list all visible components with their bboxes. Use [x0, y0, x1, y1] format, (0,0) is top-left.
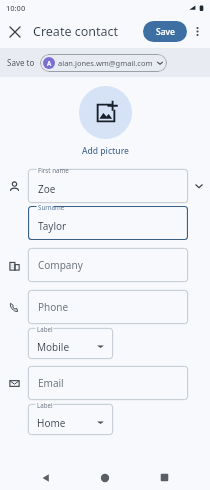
staticText: alan.jones.wm@gmail.com — [58, 58, 153, 68]
button[interactable]: Label — [28, 404, 113, 435]
button[interactable]: Home — [92, 465, 118, 490]
button[interactable]: Recent apps — [151, 465, 177, 490]
button[interactable]: First name — [28, 169, 188, 203]
staticText: Company — [38, 258, 83, 272]
staticText: Taylor — [38, 219, 67, 233]
button[interactable]: Save to — [0, 48, 210, 77]
button[interactable]: Close — [4, 21, 26, 43]
staticText: Surname — [38, 203, 65, 211]
button[interactable]: Company — [28, 248, 188, 282]
button[interactable]: Phone — [28, 290, 188, 324]
button[interactable]: Add picture — [82, 145, 129, 157]
staticText: Home — [37, 416, 66, 430]
staticText: Label — [37, 325, 53, 333]
staticText: Create contact — [33, 23, 119, 40]
button[interactable]: Email — [28, 366, 188, 400]
staticText: Save — [156, 26, 175, 38]
button[interactable]: Save — [143, 21, 187, 42]
button[interactable]: Surname — [28, 206, 188, 240]
staticText: Email — [38, 376, 64, 390]
staticText: 10:00 — [6, 3, 26, 13]
staticText: Mobile — [37, 340, 70, 354]
button[interactable]: Add picture — [79, 86, 132, 139]
staticText: First name — [38, 166, 69, 174]
button[interactable]: Label — [28, 328, 113, 359]
staticText: Zoe — [38, 182, 56, 196]
staticText: Phone — [38, 300, 69, 314]
staticText: Label — [37, 401, 53, 409]
staticText: A — [47, 59, 52, 68]
button[interactable]: Expand name fields — [188, 169, 210, 203]
staticText: Save to — [7, 57, 35, 68]
button[interactable]: Back — [33, 465, 59, 490]
button[interactable]: More options — [187, 21, 208, 42]
